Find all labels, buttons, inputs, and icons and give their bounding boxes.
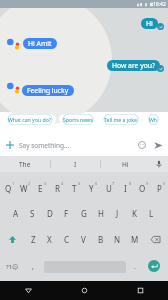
button[interactable]: Feeling lucky <box>22 85 74 96</box>
staticText: R <box>55 183 60 194</box>
staticText: How are you? <box>112 61 155 70</box>
button[interactable]: G <box>75 206 92 220</box>
button[interactable]: F <box>58 206 75 220</box>
button[interactable]: E <box>32 181 49 195</box>
button[interactable]: M <box>126 232 143 246</box>
button[interactable]: L <box>143 206 160 220</box>
button[interactable]: A <box>8 206 24 220</box>
staticText: V <box>81 234 86 245</box>
staticText: 7 <box>112 181 115 186</box>
button[interactable]: I <box>117 181 134 195</box>
staticText: W <box>20 183 28 194</box>
staticText: 1 <box>12 181 15 186</box>
staticText: Feeling lucky <box>27 86 69 95</box>
button[interactable]: Send <box>152 139 164 151</box>
staticText: C <box>64 234 70 245</box>
staticText: N <box>114 234 121 245</box>
button[interactable]: Voice input <box>150 156 168 172</box>
button[interactable]: Add <box>4 139 16 151</box>
staticText: I <box>74 160 77 169</box>
button[interactable]: Y <box>83 181 100 195</box>
button[interactable]: Sports news <box>59 114 97 125</box>
staticText: M <box>131 234 139 245</box>
button[interactable]: H <box>92 206 109 220</box>
button[interactable]: Enter <box>148 260 160 272</box>
button[interactable]: What can you do? <box>4 114 56 125</box>
staticText: Hi Amit <box>28 39 52 48</box>
button[interactable]: Q <box>0 181 16 195</box>
button[interactable]: Z <box>25 232 41 246</box>
staticText: I <box>124 183 127 194</box>
button[interactable]: , <box>27 260 39 274</box>
button[interactable]: D <box>41 206 58 220</box>
staticText: What can you do? <box>8 116 52 123</box>
staticText: 9 <box>146 181 149 186</box>
staticText: Hi <box>146 19 153 28</box>
staticText: A <box>13 208 19 219</box>
button[interactable]: . <box>129 260 141 274</box>
staticText: Sports news <box>63 116 93 123</box>
staticText: P <box>157 183 162 194</box>
button[interactable]: R <box>49 181 66 195</box>
button[interactable]: Backspace <box>143 232 168 246</box>
button[interactable]: Home <box>56 281 112 300</box>
staticText: D <box>47 208 53 219</box>
button[interactable]: U <box>100 181 117 195</box>
staticText: Q <box>5 183 12 194</box>
staticText: ?1☺ <box>6 263 19 271</box>
staticText: Say something... <box>19 141 70 150</box>
button[interactable]: I <box>51 156 100 172</box>
staticText: B <box>98 234 104 245</box>
staticText: Wh <box>149 116 158 123</box>
staticText: Y <box>89 183 94 194</box>
staticText: Hi <box>122 160 129 169</box>
staticText: H <box>98 208 104 219</box>
staticText: Z <box>31 234 36 245</box>
button[interactable]: T <box>66 181 83 195</box>
button[interactable]: K <box>126 206 143 220</box>
button[interactable]: Shift <box>0 232 25 246</box>
button[interactable]: P <box>151 181 168 195</box>
button[interactable]: Recents <box>112 281 168 300</box>
staticText: 10:42 <box>153 1 166 8</box>
button[interactable]: W <box>16 181 32 195</box>
button[interactable]: N <box>109 232 126 246</box>
button[interactable]: The <box>0 156 50 172</box>
staticText: G <box>81 208 87 219</box>
staticText: . <box>134 262 136 272</box>
button[interactable]: B <box>92 232 109 246</box>
button[interactable]: S <box>24 206 41 220</box>
button[interactable]: X <box>41 232 58 246</box>
button[interactable]: C <box>58 232 75 246</box>
staticText: K <box>132 208 137 219</box>
button[interactable]: Hi <box>101 156 150 172</box>
staticText: 8 <box>129 181 132 186</box>
staticText: 2 <box>28 181 31 186</box>
staticText: U <box>106 183 112 194</box>
button[interactable]: Back <box>0 281 56 300</box>
staticText: O <box>139 183 146 194</box>
button[interactable]: O <box>134 181 151 195</box>
staticText: Tell me a joke <box>104 116 138 123</box>
button[interactable]: Wh <box>145 114 162 125</box>
staticText: E <box>38 183 43 194</box>
staticText: S <box>30 208 35 219</box>
staticText: 5 <box>78 181 81 186</box>
button[interactable]: Hi <box>141 18 158 29</box>
button[interactable]: V <box>75 232 92 246</box>
staticText: , <box>32 262 34 272</box>
staticText: J <box>116 208 119 219</box>
button[interactable]: J <box>109 206 126 220</box>
button[interactable]: ?1☺ <box>2 260 22 274</box>
staticText: The <box>19 160 31 169</box>
staticText: 4 <box>61 181 64 186</box>
staticText: T <box>72 183 77 194</box>
staticText: 3 <box>44 181 47 186</box>
staticText: L <box>149 208 154 219</box>
button[interactable]: Tell me a joke <box>100 114 142 125</box>
button[interactable]: Hi Amit <box>23 38 57 49</box>
button[interactable]: How are you? <box>107 60 160 71</box>
button[interactable]: Emoji <box>136 139 148 151</box>
staticText: 6 <box>95 181 98 186</box>
